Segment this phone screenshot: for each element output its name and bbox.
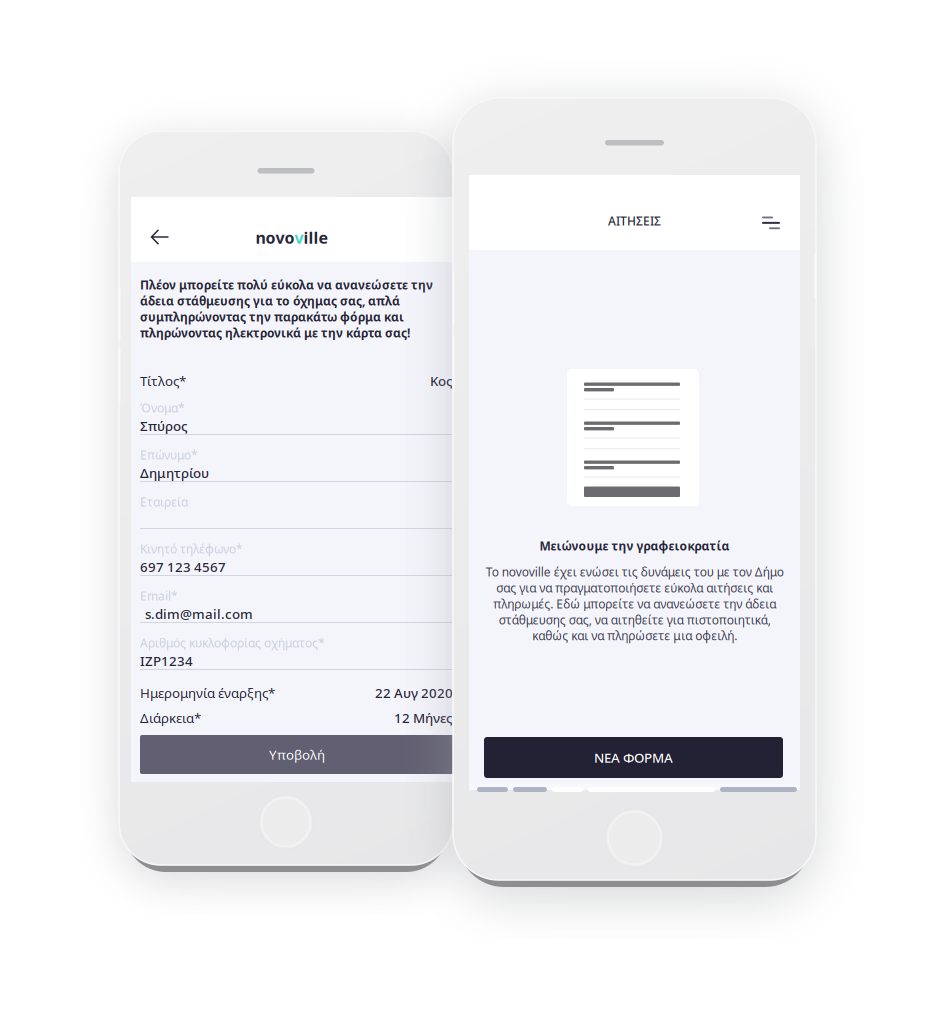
button[interactable]: Menu [750, 202, 792, 244]
staticText: novo [255, 227, 294, 248]
staticText: Όνομα* [140, 400, 185, 416]
staticText: Ημερομηνία έναρξης* [140, 684, 275, 702]
staticText: ΝΕΑ ΦΟΡΜΑ [594, 749, 673, 766]
staticText: Επώνυμο* [140, 447, 198, 463]
staticText: Σπύρος [140, 417, 188, 435]
staticText: 697 123 4567 [140, 558, 226, 576]
button[interactable]: Ημερομηνία έναρξης* [140, 684, 453, 702]
button[interactable]: Όνομα* [140, 399, 453, 446]
button[interactable]: Επώνυμο* [140, 446, 453, 493]
staticText: Email* [140, 588, 178, 604]
staticText: 22 Αυγ 2020 [375, 684, 453, 702]
button[interactable]: Email* [140, 587, 453, 634]
staticText: s.dim@mail.com [145, 605, 253, 623]
staticText: 12 Μήνες [394, 709, 453, 727]
staticText: Υποβολή [269, 746, 325, 763]
staticText: Κος [430, 372, 453, 390]
button[interactable]: Αριθμός κυκλοφορίας οχήματος* [140, 634, 453, 681]
staticText: Αριθμός κυκλοφορίας οχήματος* [140, 635, 325, 651]
staticText: ille [303, 227, 328, 248]
staticText: v [294, 227, 303, 248]
staticText: Εταιρεία [140, 494, 188, 510]
button[interactable]: Τίτλος* [140, 372, 453, 390]
staticText: Δημητρίου [140, 464, 209, 482]
staticText: Τίτλος* [140, 372, 186, 390]
button[interactable]: Εταιρεία [140, 493, 453, 540]
staticText: Διάρκεια* [140, 709, 201, 727]
button[interactable]: Κινητό τηλέφωνο* [140, 540, 453, 587]
button[interactable]: ΝΕΑ ΦΟΡΜΑ [484, 737, 783, 778]
button[interactable]: Υποβολή [140, 735, 454, 774]
staticText: Κινητό τηλέφωνο* [140, 541, 243, 557]
staticText: Πλέον μπορείτε πολύ εύκολα να ανανεώσετε… [140, 277, 433, 341]
staticText: Μειώνουμε την γραφειοκρατία [539, 538, 729, 554]
button[interactable]: Διάρκεια* [140, 709, 453, 727]
staticText: IZP1234 [140, 652, 193, 670]
button[interactable]: Back [138, 215, 182, 259]
staticText: ΑΙΤΗΣΕΙΣ [608, 213, 661, 229]
staticText: Το novoville έχει ενώσει τις δυνάμεις το… [485, 564, 783, 644]
